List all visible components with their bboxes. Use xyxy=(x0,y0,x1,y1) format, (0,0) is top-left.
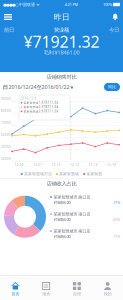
staticText: 某家智慧城3:¥78711.04 xyxy=(23,110,58,113)
staticText: 某家智慧 xyxy=(86,171,102,176)
staticText: 60000 xyxy=(1,133,11,137)
staticText: ¥18456.00 xyxy=(53,200,70,205)
staticText: 昨日 xyxy=(54,12,70,22)
staticText: 12-13 xyxy=(70,163,79,167)
staticText: 12-07 xyxy=(33,163,42,167)
staticText: 4:21 PM xyxy=(64,2,78,7)
staticText: 某家智慧城市-港口店 xyxy=(53,211,90,217)
staticText: ¥18456.00 xyxy=(53,217,70,222)
staticText: 某家智慧城市店 xyxy=(24,171,52,176)
staticText: 70000 xyxy=(1,121,11,125)
staticText: 某家智慧城 xyxy=(59,171,79,176)
button[interactable]: 应用 xyxy=(61,279,92,296)
button[interactable]: Notifications xyxy=(107,9,123,25)
staticText: 90000 xyxy=(1,97,11,101)
staticText: 前日 xyxy=(4,27,14,33)
staticText: 12-16 xyxy=(89,163,98,167)
staticText: 2016-12-8 xyxy=(21,97,37,100)
staticText: 12-19 xyxy=(107,163,116,167)
staticText: 2016/12/24至2016/01/22 ▾ xyxy=(7,83,73,91)
staticText: 毛利 ¥18461.00 xyxy=(43,49,79,56)
staticText: ¥18456.00 xyxy=(53,234,70,239)
staticText: 同比 xyxy=(108,84,116,89)
staticText: 某家智慧城2:¥78711.04 xyxy=(23,105,58,109)
staticText: 40000 xyxy=(1,157,11,161)
button[interactable]: 报表 xyxy=(31,279,62,296)
staticText: 37% xyxy=(113,200,120,205)
button[interactable]: 同比 xyxy=(104,83,120,91)
staticText: ¥71921.32 xyxy=(23,31,99,52)
staticText: 营业额 xyxy=(54,27,69,33)
button[interactable]: Menu xyxy=(0,9,16,25)
staticText: 50000 xyxy=(1,145,11,149)
staticText: 店铺收入占比 xyxy=(46,180,76,187)
staticText: ●●●●○ 中国联通 ᯤ xyxy=(3,2,40,7)
button[interactable]: 我的 xyxy=(92,279,123,296)
staticText: 17% xyxy=(113,234,120,239)
staticText: 22% xyxy=(113,217,120,222)
staticText: 店铺销售对比 xyxy=(46,74,76,80)
staticText: 80000 xyxy=(1,109,11,113)
staticText: 今日 xyxy=(109,27,119,33)
button[interactable]: 今日 xyxy=(106,25,122,35)
staticText: 应用 xyxy=(73,291,81,296)
staticText: 100% xyxy=(103,2,112,7)
button[interactable]: 前日 xyxy=(1,25,17,35)
staticText: 12-10 xyxy=(52,163,61,167)
staticText: 某家智慧城1:¥78711.04 xyxy=(23,101,58,104)
staticText: 某家智慧城市-路口店 xyxy=(53,194,90,200)
staticText: 我的 xyxy=(104,291,112,296)
staticText: 12-04 xyxy=(15,163,24,167)
button[interactable]: 首页 xyxy=(0,279,31,296)
staticText: 首页 xyxy=(11,291,19,296)
staticText: 报表 xyxy=(42,291,50,296)
staticText: 某家智慧城市-南口店 xyxy=(53,228,90,234)
